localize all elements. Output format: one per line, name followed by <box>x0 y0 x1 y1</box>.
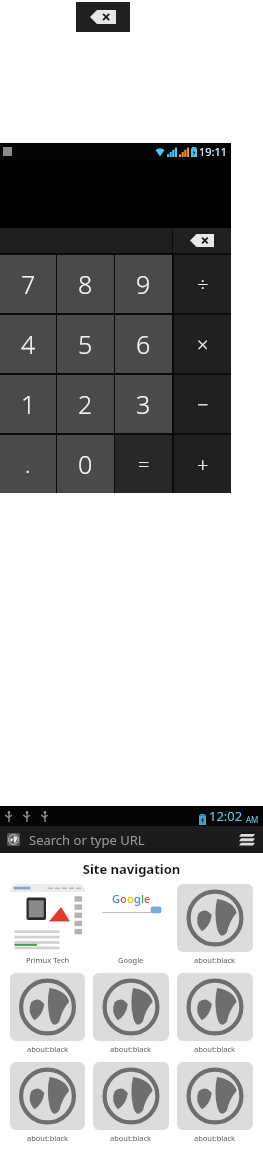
button[interactable]: about:black <box>10 1062 85 1143</box>
staticText: 19:11 <box>199 144 228 159</box>
staticText: 9 <box>136 267 151 301</box>
button[interactable]: Backspace <box>173 228 231 253</box>
staticText: ÷ <box>197 271 209 298</box>
button[interactable]: = <box>115 435 172 493</box>
staticText: 5 <box>78 327 93 361</box>
staticText: g <box>134 891 141 906</box>
button[interactable]: 8 <box>57 255 114 313</box>
button[interactable]: Tabs <box>236 830 256 850</box>
button[interactable]: 4 <box>0 315 56 373</box>
staticText: + <box>197 451 209 478</box>
button[interactable]: 5 <box>57 315 114 373</box>
staticText: 1 <box>21 387 36 421</box>
staticText: l <box>141 891 144 906</box>
staticText: about:black <box>194 955 236 965</box>
staticText: = <box>138 451 150 478</box>
staticText: 4 <box>21 327 36 361</box>
staticText: 6 <box>136 327 151 361</box>
button[interactable]: × <box>174 315 231 373</box>
staticText: 8 <box>78 267 93 301</box>
button[interactable]: Search or type URL <box>29 831 236 849</box>
staticText: about:black <box>194 1133 236 1143</box>
staticText: 0 <box>78 447 93 481</box>
staticText: about:black <box>110 1133 152 1143</box>
button[interactable]: about:black <box>177 973 253 1054</box>
button[interactable]: 1 <box>0 375 56 433</box>
staticText: 12:02 <box>209 807 243 825</box>
staticText: about:black <box>110 1044 152 1054</box>
button[interactable]: about:black <box>177 884 253 965</box>
staticText: Google <box>118 955 144 965</box>
staticText: × <box>197 331 209 358</box>
staticText: o <box>127 891 134 906</box>
button[interactable]: . <box>0 435 56 493</box>
button[interactable]: 2 <box>57 375 114 433</box>
staticText: Primux Tech <box>26 955 70 965</box>
button[interactable]: 6 <box>115 315 172 373</box>
button[interactable]: 3 <box>115 375 172 433</box>
button[interactable]: ÷ <box>174 255 231 313</box>
button[interactable]: about:black <box>93 973 169 1054</box>
staticText: 3 <box>136 387 151 421</box>
staticText: e <box>144 891 151 906</box>
staticText: G <box>112 891 120 906</box>
staticText: − <box>197 391 209 418</box>
button[interactable]: Primux Tech <box>10 884 85 965</box>
button[interactable]: about:black <box>177 1062 253 1143</box>
button[interactable]: + <box>174 435 231 493</box>
button[interactable]: − <box>174 375 231 433</box>
button[interactable]: about:black <box>93 1062 169 1143</box>
button[interactable]: Site icon <box>7 833 20 846</box>
staticText: about:black <box>27 1044 69 1054</box>
staticText: Site navigation <box>0 860 263 878</box>
staticText: o <box>120 891 127 906</box>
button[interactable]: about:black <box>10 973 85 1054</box>
staticText: 2 <box>78 387 93 421</box>
staticText: about:black <box>27 1133 69 1143</box>
staticText: 7 <box>21 267 36 301</box>
button[interactable]: G <box>93 884 169 965</box>
staticText: . <box>25 449 31 479</box>
button[interactable]: 7 <box>0 255 56 313</box>
staticText: AM <box>246 814 259 825</box>
button[interactable]: Backspace <box>76 2 130 32</box>
button[interactable]: 0 <box>57 435 114 493</box>
staticText: about:black <box>194 1044 236 1054</box>
button[interactable]: 9 <box>115 255 172 313</box>
